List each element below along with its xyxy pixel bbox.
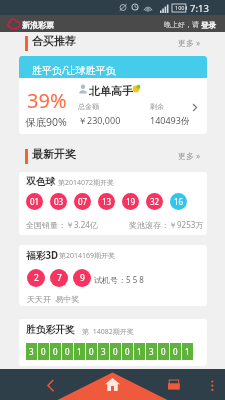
staticText: 更多 » — [178, 37, 201, 48]
staticText: 01 — [30, 196, 40, 207]
staticText: 19 — [126, 196, 136, 207]
staticText: 双色球 — [26, 176, 56, 188]
staticText: 0 — [53, 346, 58, 357]
staticText: 9 — [80, 272, 85, 284]
button[interactable]: Back — [43, 376, 59, 392]
staticText: 13 — [102, 196, 112, 207]
staticText: 第2014072期开奖 — [58, 178, 115, 188]
staticText: 3 — [149, 346, 154, 357]
staticText: 0 — [173, 346, 178, 357]
staticText: 0 — [65, 346, 70, 357]
staticText: 剩余 — [150, 102, 164, 111]
staticText: 北单高手 — [89, 84, 133, 98]
staticText: 试机号：5 5 8 — [94, 274, 144, 285]
staticText: 更多 » — [178, 150, 201, 161]
staticText: 7:13 — [190, 2, 209, 15]
staticText: 03 — [54, 196, 64, 207]
staticText: 0 — [125, 346, 130, 357]
staticText: 16 — [174, 196, 184, 207]
staticText: 0 — [41, 346, 46, 357]
staticText: 登录 — [201, 21, 216, 30]
staticText: 2 — [34, 272, 39, 284]
staticText: 3 — [29, 346, 34, 357]
staticText: 保底90% — [25, 115, 67, 129]
button[interactable]: 更多 » — [178, 37, 201, 48]
button[interactable]: 福彩3D — [19, 245, 207, 306]
staticText: 奖池滚存：￥9253万 — [129, 219, 204, 230]
staticText: 140493份 — [150, 114, 190, 126]
button[interactable]: 双色球 — [19, 172, 207, 235]
button[interactable]: Home — [105, 378, 120, 391]
button[interactable]: 晚上好，请 — [164, 20, 216, 30]
staticText: 合买推荐 — [32, 34, 76, 48]
staticText: 1 — [137, 346, 142, 357]
button[interactable]: 胜平负/让球胜平负 — [19, 56, 207, 134]
staticText: 3 — [101, 346, 106, 357]
button[interactable]: Recent apps — [166, 377, 182, 393]
staticText: 第2014169期开奖 — [59, 251, 116, 261]
staticText: 0 — [161, 346, 166, 357]
staticText: 39% — [27, 87, 67, 114]
staticText: 福彩3D — [26, 249, 59, 262]
staticText: 晚上好，请 — [164, 20, 201, 30]
staticText: 1 — [77, 346, 82, 357]
staticText: 全国销量：￥3.24亿 — [26, 219, 98, 230]
staticText: 07 — [78, 196, 88, 207]
staticText: 总金额 — [78, 102, 99, 111]
staticText: 1 — [185, 346, 190, 357]
staticText: 新浪彩票 — [22, 20, 54, 30]
button[interactable]: 更多 » — [178, 150, 201, 161]
button[interactable]: 胜负彩开奖 — [19, 319, 207, 366]
staticText: ￥230,000 — [78, 114, 121, 126]
staticText: 7 — [57, 272, 62, 284]
staticText: 胜负彩开奖 — [26, 324, 75, 336]
staticText: 32 — [150, 196, 160, 207]
staticText: 最新开奖 — [32, 147, 76, 161]
staticText: 0 — [113, 346, 118, 357]
staticText: 胜平负/让球胜平负 — [32, 63, 116, 77]
staticText: 0 — [89, 346, 94, 357]
button[interactable]: More options — [206, 378, 219, 391]
staticText: 天天开 易中奖 — [27, 293, 80, 304]
staticText: 100 — [175, 4, 185, 11]
staticText: 第 14082期开奖 — [82, 327, 134, 337]
